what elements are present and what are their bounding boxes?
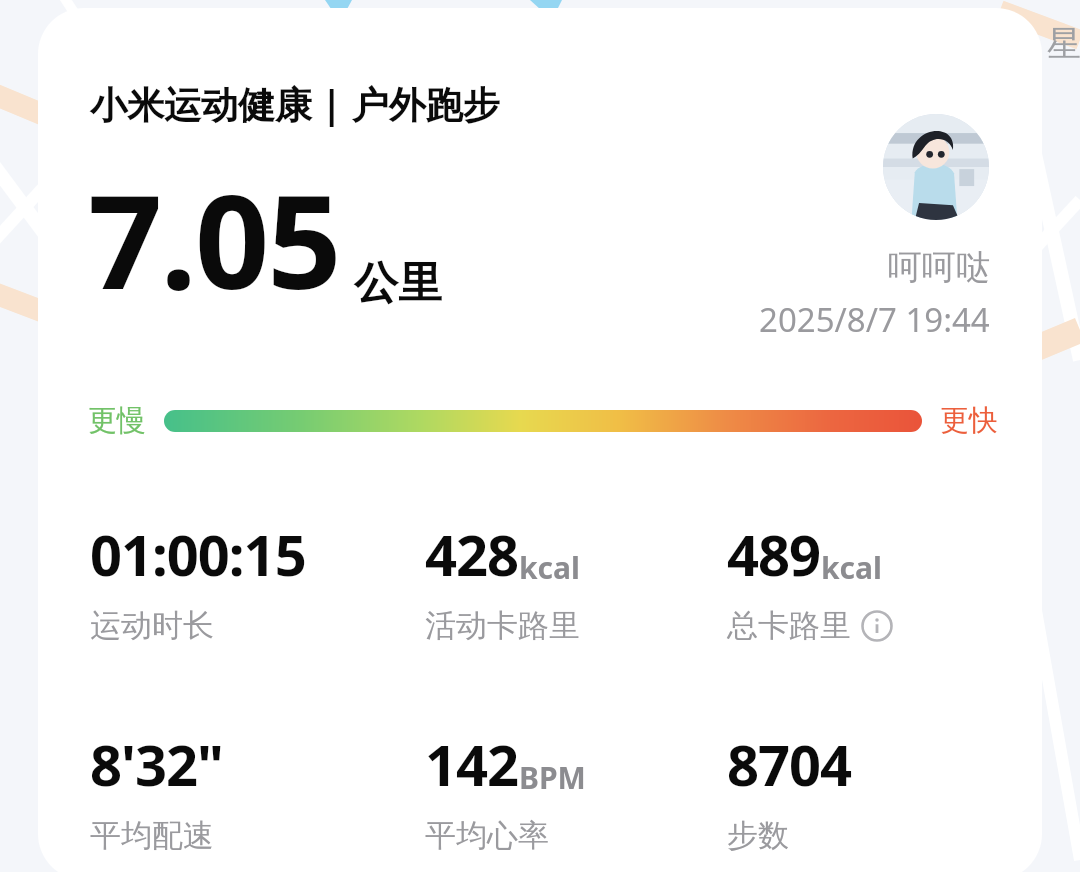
staticText: 428 — [425, 516, 519, 592]
staticText: 01:00:15 — [90, 516, 306, 592]
staticText: 更慢 — [88, 402, 146, 439]
staticText: 7.05 — [88, 150, 340, 327]
staticText: 总卡路里 — [727, 606, 851, 645]
staticText: kcal — [519, 547, 580, 588]
staticText: 活动卡路里 — [425, 606, 580, 645]
button[interactable]: 01:00:15 — [90, 516, 390, 645]
staticText: 489 — [727, 516, 821, 592]
button[interactable]: 小米运动健康 | 户外跑步 — [38, 8, 1042, 872]
staticText: 平均心率 — [425, 816, 549, 855]
staticText: 星 — [1047, 22, 1080, 65]
staticText: BPM — [519, 757, 586, 798]
staticText: 8704 — [727, 726, 852, 802]
button[interactable]: Profile avatar — [883, 114, 989, 220]
button[interactable]: 428 — [425, 516, 725, 645]
staticText: 更快 — [940, 402, 998, 439]
button[interactable]: Total calories info — [861, 610, 893, 642]
staticText: 小米运动健康 | 户外跑步 — [90, 78, 500, 129]
staticText: 步数 — [727, 816, 789, 855]
button[interactable]: 489 — [727, 516, 1027, 645]
staticText: 142 — [425, 726, 519, 802]
staticText: kcal — [821, 547, 882, 588]
button[interactable]: 8'32" — [90, 726, 390, 855]
staticText: 平均配速 — [90, 816, 214, 855]
staticText: 呵呵哒 — [888, 246, 990, 289]
staticText: 运动时长 — [90, 606, 214, 645]
button[interactable]: 142 — [425, 726, 725, 855]
staticText: 2025/8/7 19:44 — [759, 297, 990, 342]
staticText: 8'32" — [90, 726, 223, 802]
button[interactable]: 8704 — [727, 726, 1027, 855]
staticText: 公里 — [354, 256, 442, 311]
